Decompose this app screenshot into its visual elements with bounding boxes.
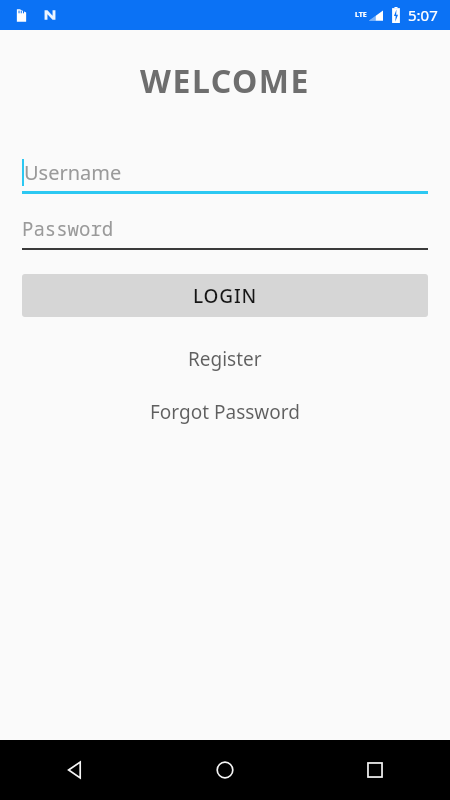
staticText: Username xyxy=(24,159,122,186)
staticText: WELCOME xyxy=(0,59,450,103)
staticText: Register xyxy=(188,346,262,372)
button[interactable]: Home xyxy=(150,740,300,800)
button[interactable]: Forgot Password xyxy=(0,397,450,427)
staticText: Password xyxy=(22,216,114,242)
staticText: LTE xyxy=(355,10,367,20)
button[interactable]: Register xyxy=(0,344,450,374)
button[interactable]: LOGIN xyxy=(22,274,428,317)
staticText: 5:07 xyxy=(408,5,438,25)
button[interactable]: Username xyxy=(22,154,428,194)
staticText: LOGIN xyxy=(193,283,257,309)
staticText: Forgot Password xyxy=(150,399,300,425)
button[interactable]: Recent apps xyxy=(300,740,450,800)
button[interactable]: Password xyxy=(22,210,428,250)
button[interactable]: Back xyxy=(0,740,150,800)
